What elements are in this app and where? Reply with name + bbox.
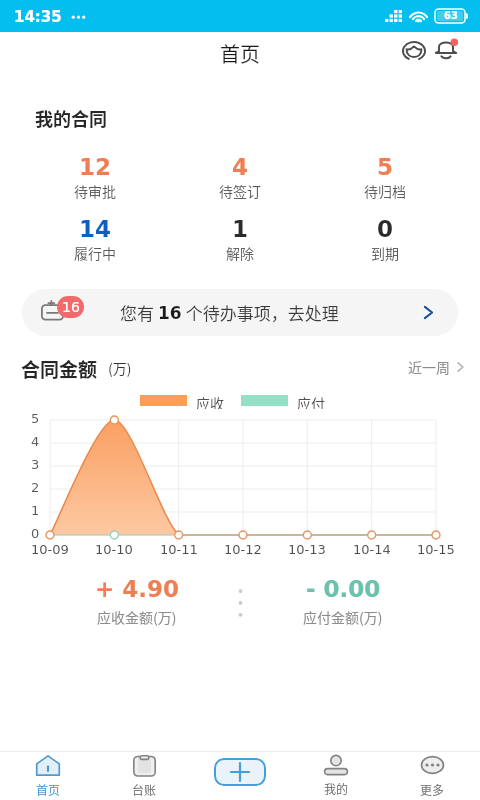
button[interactable]: 12 xyxy=(45,154,145,204)
staticText: 0 xyxy=(377,216,394,243)
staticText: 您有 xyxy=(120,300,158,325)
staticText: 近一周 xyxy=(408,357,450,377)
staticText: 4 xyxy=(232,154,249,181)
staticText: 14 xyxy=(79,216,112,243)
button[interactable]: 更多 xyxy=(384,752,480,800)
staticText: 0 xyxy=(31,526,40,541)
button[interactable]: 我的 xyxy=(288,752,384,800)
staticText: 10-13 xyxy=(288,542,326,557)
staticText: 履行中 xyxy=(74,243,116,263)
staticText: 16 xyxy=(62,299,80,315)
staticText: 解除 xyxy=(226,243,254,263)
staticText: 待审批 xyxy=(74,181,116,201)
staticText: 首页 xyxy=(36,781,61,798)
staticText: 1 xyxy=(31,503,40,518)
staticText: 63 xyxy=(444,10,458,22)
staticText: 更多 xyxy=(420,781,445,798)
staticText: 首页 xyxy=(220,39,260,68)
staticText: 12 xyxy=(79,154,112,181)
staticText: 我的 xyxy=(324,780,349,797)
staticText: - 0.00 xyxy=(306,576,381,603)
staticText: 10-10 xyxy=(95,542,133,557)
button[interactable]: 4 xyxy=(190,154,290,204)
staticText: 1 xyxy=(232,216,249,243)
button[interactable]: 客服 xyxy=(398,35,430,67)
staticText: (万) xyxy=(108,358,132,378)
staticText: 个待办事项，去处理 xyxy=(182,300,339,325)
staticText: 待归档 xyxy=(364,181,406,201)
button[interactable]: 首页 xyxy=(0,752,96,800)
staticText: 10-15 xyxy=(417,542,455,557)
staticText: 14:35 xyxy=(14,8,62,25)
button[interactable]: 新建 xyxy=(214,758,266,786)
button[interactable]: 台账 xyxy=(96,752,192,800)
staticText: 2 xyxy=(31,480,40,495)
staticText: 合同金额 xyxy=(21,355,98,379)
button[interactable]: 5 xyxy=(335,154,435,204)
button[interactable]: 14 xyxy=(45,216,145,266)
staticText: 10-14 xyxy=(353,542,391,557)
staticText: 我的合同 xyxy=(35,105,107,131)
staticText: 应付金额(万) xyxy=(303,607,383,627)
staticText: 4 xyxy=(31,434,40,449)
staticText: 台账 xyxy=(132,781,157,798)
staticText: 5 xyxy=(31,411,40,426)
staticText: 5 xyxy=(377,154,394,181)
button[interactable]: 1 xyxy=(190,216,290,266)
staticText: + 4.90 xyxy=(95,576,180,603)
staticText: 应付 xyxy=(297,393,325,409)
staticText: 待签订 xyxy=(219,181,261,201)
staticText: 10-09 xyxy=(31,542,69,557)
staticText: 10-12 xyxy=(224,542,262,557)
staticText: 应收 xyxy=(196,393,224,409)
staticText: 到期 xyxy=(371,243,399,263)
staticText: 3 xyxy=(31,457,40,472)
staticText: 16 xyxy=(158,303,182,323)
staticText: 10-11 xyxy=(160,542,198,557)
button[interactable]: 0 xyxy=(335,216,435,266)
button[interactable]: 近一周 xyxy=(408,357,466,377)
staticText: 应收金额(万) xyxy=(97,607,177,627)
button[interactable]: 16 xyxy=(22,289,458,336)
button[interactable]: 通知 xyxy=(430,35,462,67)
